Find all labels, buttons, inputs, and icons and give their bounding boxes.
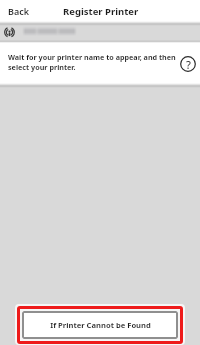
staticText: Back xyxy=(8,5,30,17)
button[interactable]: Back xyxy=(0,1,38,21)
button[interactable]: If Printer Cannot be Found xyxy=(22,311,178,339)
staticText: Register Printer xyxy=(63,5,139,18)
staticText: ? xyxy=(186,57,191,72)
staticText: If Printer Cannot be Found xyxy=(50,320,151,330)
button[interactable]: Help xyxy=(178,54,198,74)
staticText: Wait for your printer name to appear, an… xyxy=(8,52,176,72)
